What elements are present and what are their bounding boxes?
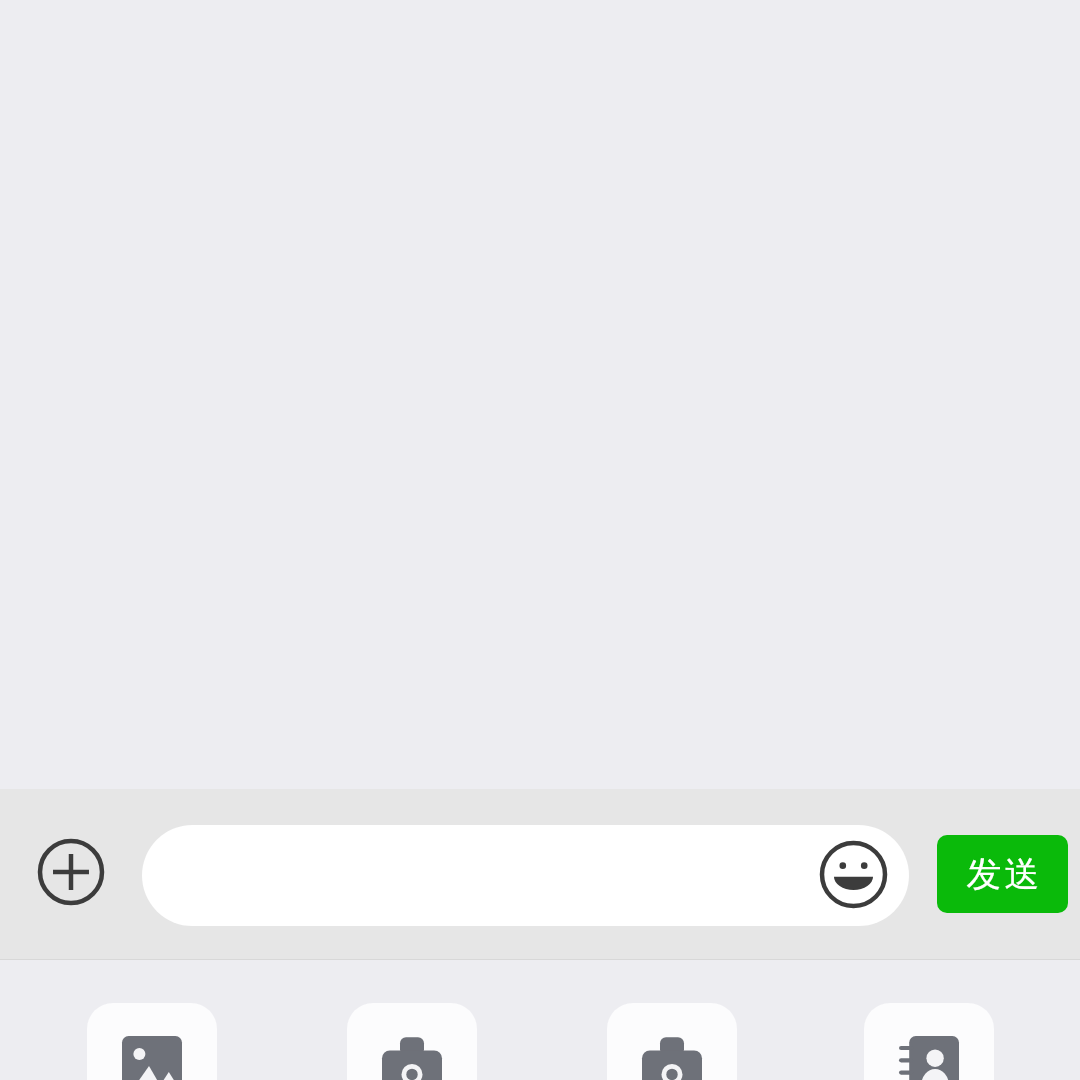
button[interactable]: Message input field [142, 825, 909, 926]
staticText: 发送 [965, 852, 1041, 896]
button[interactable]: Video call [607, 1003, 737, 1080]
button[interactable]: Photos [87, 1003, 217, 1080]
button[interactable]: Camera [347, 1003, 477, 1080]
button[interactable]: Emoji [816, 837, 891, 912]
button[interactable]: More, add attachment [29, 830, 113, 914]
button[interactable]: 发送 [937, 835, 1068, 913]
button[interactable]: Contact card [864, 1003, 994, 1080]
